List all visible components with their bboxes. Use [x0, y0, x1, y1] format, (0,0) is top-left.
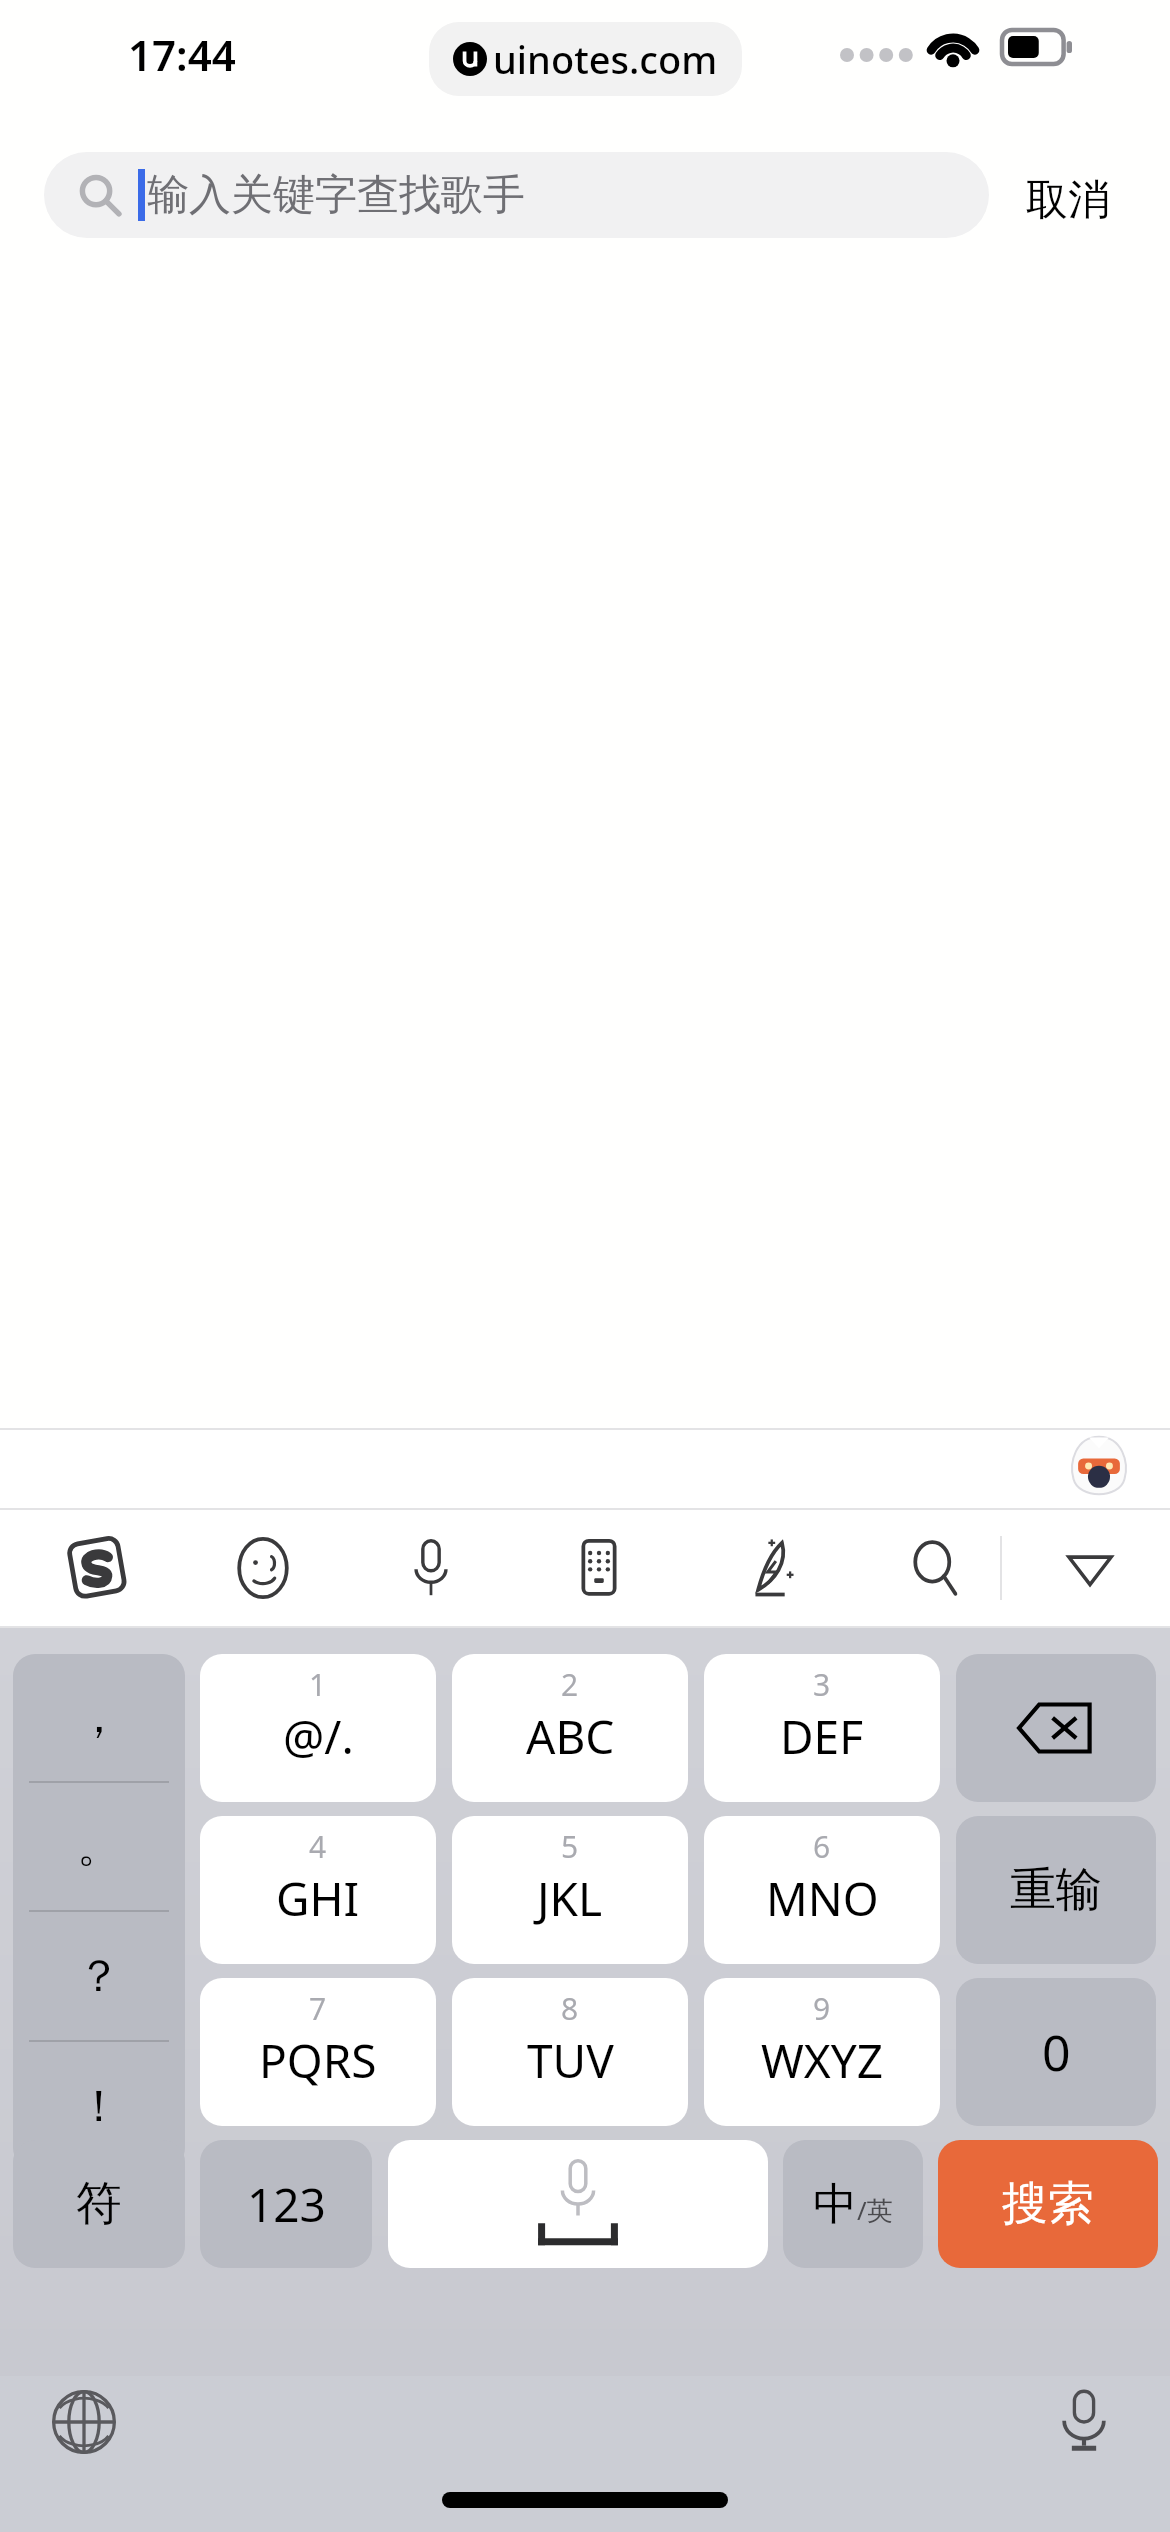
button[interactable]: 搜索	[938, 2140, 1158, 2268]
button[interactable]: ，	[13, 1654, 185, 2170]
button[interactable]: Hide keyboard	[1010, 1508, 1170, 1628]
button[interactable]: Sogou assistant	[1070, 1434, 1128, 1502]
staticText: 中	[813, 2177, 857, 2232]
staticText: PQRS	[259, 2029, 377, 2092]
button[interactable]: 0	[956, 1978, 1156, 2126]
staticText: 搜索	[1002, 2175, 1094, 2233]
button[interactable]: 5	[452, 1816, 688, 1964]
button[interactable]: Handwriting	[684, 1508, 850, 1628]
button[interactable]: Voice input	[348, 1508, 514, 1628]
staticText: 输入关键字查找歌手	[147, 169, 525, 222]
button[interactable]: 9	[704, 1978, 940, 2126]
button[interactable]: 8	[452, 1978, 688, 2126]
staticText: ？	[77, 1949, 121, 2004]
staticText: ，	[77, 1690, 121, 1745]
button[interactable]: Backspace	[956, 1654, 1156, 1802]
button[interactable]: 6	[704, 1816, 940, 1964]
button[interactable]: Switch language	[42, 2380, 126, 2464]
staticText: 8	[561, 1988, 579, 2029]
staticText: MNO	[766, 1867, 879, 1930]
button[interactable]: Dictation	[1042, 2380, 1126, 2464]
staticText: 0	[1042, 2018, 1071, 2086]
button[interactable]: 中	[783, 2140, 923, 2268]
button[interactable]: 符	[13, 2140, 185, 2268]
staticText: 123	[247, 2173, 326, 2236]
button[interactable]: Sogou input	[14, 1508, 180, 1628]
button[interactable]: Space	[388, 2140, 768, 2268]
staticText: JKL	[537, 1867, 603, 1930]
staticText: DEF	[780, 1705, 864, 1768]
button[interactable]: 3	[704, 1654, 940, 1802]
staticText: 9	[813, 1988, 831, 2029]
staticText: /英	[857, 2192, 893, 2228]
button[interactable]: 123	[200, 2140, 372, 2268]
staticText: 17:44	[128, 26, 236, 83]
staticText: 。	[77, 1819, 121, 1874]
button[interactable]: 7	[200, 1978, 436, 2126]
staticText: 7	[309, 1988, 327, 2029]
staticText: 6	[813, 1826, 831, 1867]
staticText: 2	[561, 1664, 579, 1705]
button[interactable]: 输入关键字查找歌手	[44, 152, 989, 238]
button[interactable]: 2	[452, 1654, 688, 1802]
button[interactable]: Keyboard type	[516, 1508, 682, 1628]
button[interactable]: Search	[852, 1508, 1018, 1628]
staticText: 3	[813, 1664, 831, 1705]
button[interactable]: 1	[200, 1654, 436, 1802]
staticText: @/.	[283, 1705, 354, 1768]
staticText: ABC	[526, 1705, 615, 1768]
button[interactable]: 4	[200, 1816, 436, 1964]
staticText: TUV	[527, 2029, 614, 2092]
staticText: 5	[561, 1826, 579, 1867]
staticText: uinotes.com	[493, 33, 718, 85]
button[interactable]: Emoji	[180, 1508, 346, 1628]
button[interactable]: 重输	[956, 1816, 1156, 1964]
staticText: GHI	[276, 1867, 360, 1930]
staticText: 重输	[1010, 1861, 1102, 1919]
staticText: ！	[77, 2079, 121, 2134]
staticText: 符	[76, 2175, 122, 2233]
staticText: 4	[309, 1826, 327, 1867]
button[interactable]: 取消	[1018, 166, 1118, 235]
staticText: WXYZ	[761, 2029, 884, 2092]
staticText: 1	[309, 1664, 327, 1705]
staticText: 取消	[1026, 174, 1110, 227]
